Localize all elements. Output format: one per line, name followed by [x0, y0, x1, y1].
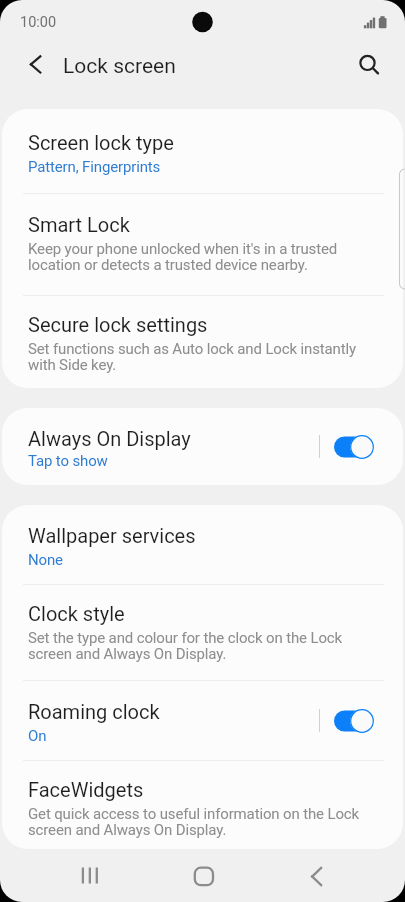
staticText: Set the type and colour for the clock on…	[28, 629, 343, 663]
button[interactable]: Always On Display switch, on	[333, 408, 375, 485]
button[interactable]: Wallpaper services	[2, 505, 403, 584]
staticText: Always On Display	[28, 427, 191, 450]
staticText: FaceWidgets	[28, 778, 144, 801]
staticText: 10:00	[20, 14, 57, 31]
button[interactable]: Roaming clock switch, on	[333, 681, 375, 760]
staticText: Secure lock settings	[28, 313, 208, 336]
button[interactable]: Roaming clock	[2, 681, 403, 760]
staticText: Roaming clock	[28, 700, 160, 723]
staticText: Smart Lock	[28, 213, 130, 236]
staticText: None	[28, 551, 63, 569]
staticText: Keep your phone unlocked when it's in a …	[28, 240, 338, 274]
button[interactable]: Clock style	[2, 585, 403, 680]
staticText: Lock screen	[63, 54, 176, 79]
button[interactable]: Navigate up	[13, 44, 57, 85]
button[interactable]: Always On Display	[2, 408, 403, 485]
staticText: Clock style	[28, 602, 125, 625]
staticText: Pattern, Fingerprints	[28, 158, 161, 176]
button[interactable]: Search	[345, 44, 389, 85]
button[interactable]: Secure lock settings	[2, 296, 403, 388]
staticText: Wallpaper services	[28, 524, 196, 547]
staticText: Screen lock type	[28, 131, 174, 154]
button[interactable]: Screen lock type	[2, 109, 403, 193]
button[interactable]: Home	[175, 849, 231, 902]
button[interactable]: FaceWidgets	[2, 761, 403, 849]
staticText: Set functions such as Auto lock and Lock…	[28, 340, 356, 374]
button[interactable]: Back	[288, 849, 344, 902]
staticText: Tap to show	[28, 452, 108, 470]
staticText: On	[28, 727, 47, 745]
button[interactable]: Smart Lock	[2, 194, 403, 295]
button[interactable]: Recent apps	[62, 849, 118, 902]
staticText: Get quick access to useful information o…	[28, 805, 359, 839]
